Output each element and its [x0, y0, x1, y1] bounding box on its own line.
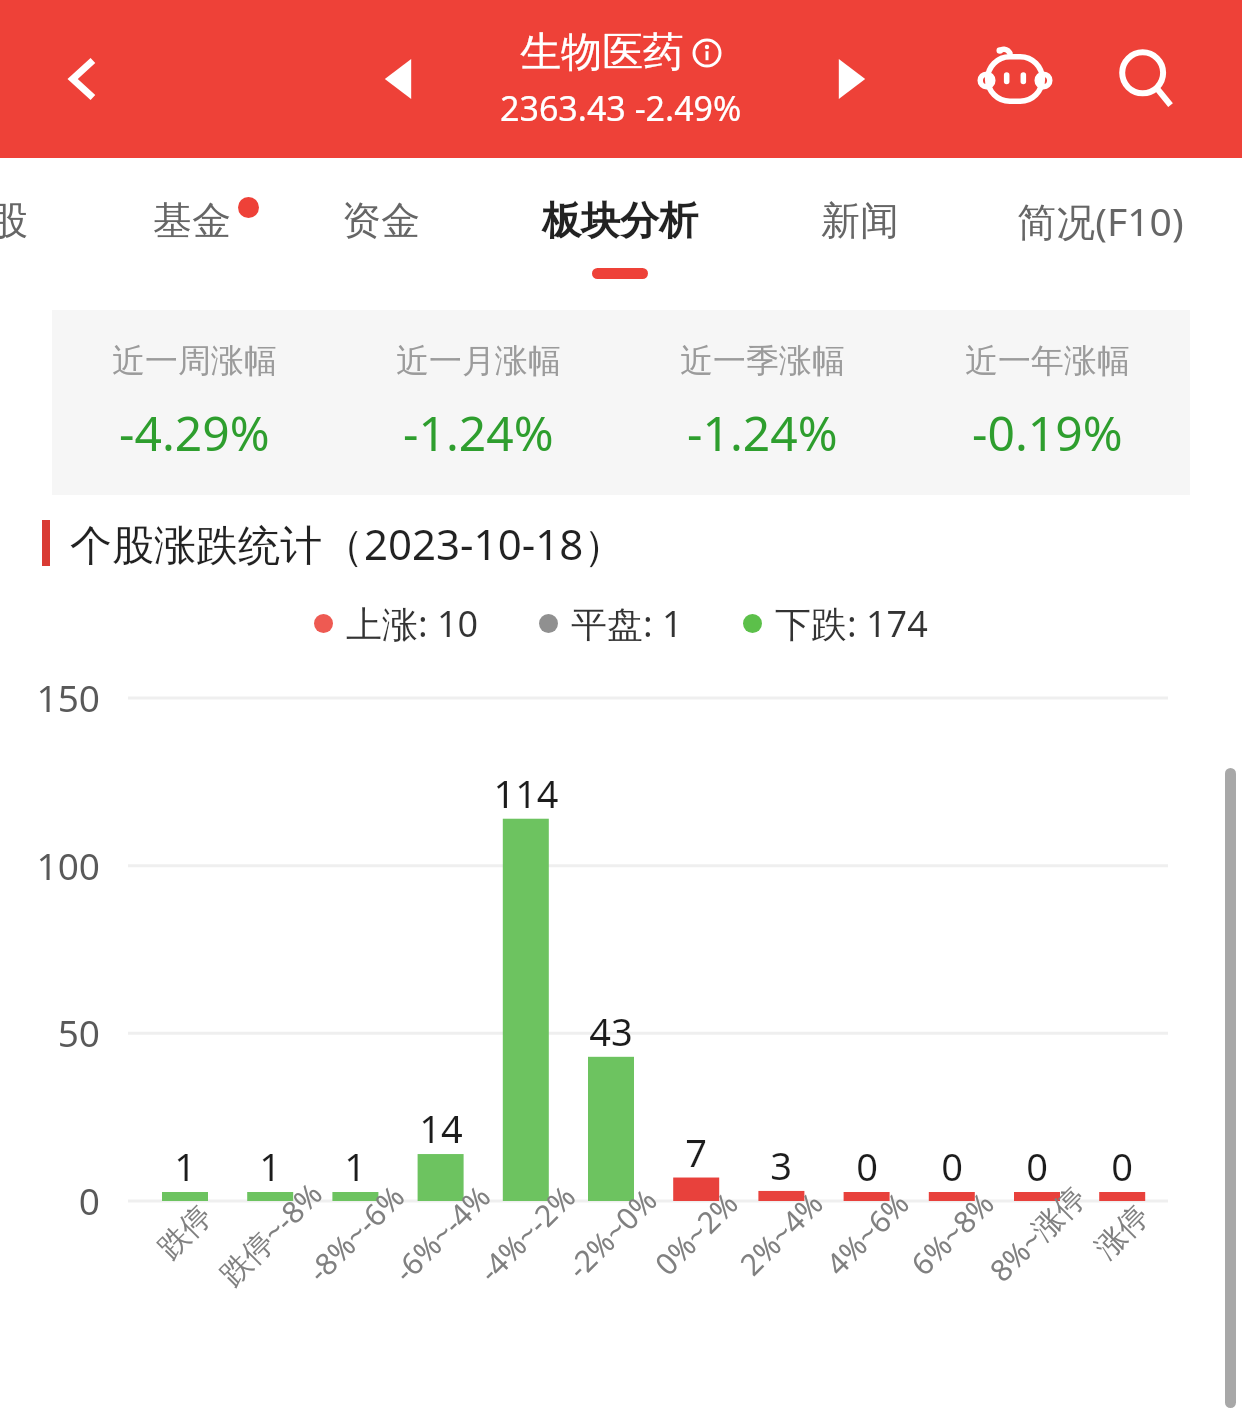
staticText: 基金 — [153, 196, 231, 245]
staticText: 平盘: 1 — [571, 599, 683, 648]
button[interactable]: 板块分析 — [515, 158, 725, 283]
staticText: 资金 — [342, 196, 420, 245]
staticText: 50 — [57, 1007, 100, 1057]
button[interactable]: AI assistant — [965, 29, 1065, 129]
button[interactable]: 平盘: 1 — [539, 599, 683, 648]
staticText: 0 — [856, 1140, 878, 1192]
staticText: 43 — [589, 1005, 633, 1057]
staticText: 0 — [941, 1140, 963, 1192]
staticText: 1 — [174, 1140, 196, 1192]
button[interactable]: Next sector — [805, 34, 895, 124]
staticText: 近一年涨幅 — [965, 340, 1130, 382]
staticText: -1.24% — [687, 400, 838, 465]
button[interactable]: 基金 — [87, 158, 297, 283]
staticText: 8%~涨停 — [980, 1177, 1094, 1290]
button[interactable]: Back — [40, 34, 130, 124]
button[interactable]: 上涨: 10 — [314, 599, 479, 648]
button[interactable]: 下跌: 174 — [743, 599, 928, 648]
button[interactable]: 资金 — [276, 158, 486, 283]
staticText: 上涨: 10 — [346, 599, 479, 648]
staticText: 14 — [419, 1102, 463, 1154]
staticText: -1.24% — [403, 400, 554, 465]
staticText: 6%~8% — [901, 1183, 1002, 1284]
staticText: -4.29% — [119, 400, 270, 465]
staticText: 100 — [36, 840, 100, 890]
button[interactable]: 股 — [0, 158, 113, 283]
button[interactable]: 生物医药 — [500, 27, 742, 131]
staticText: 0 — [1026, 1140, 1048, 1192]
staticText: -4%~-2% — [469, 1176, 584, 1291]
button[interactable]: 近一月涨幅 — [336, 310, 620, 495]
staticText: 150 — [36, 672, 100, 722]
button[interactable]: 近一年涨幅 — [905, 310, 1190, 495]
staticText: 2%~4% — [730, 1183, 831, 1284]
staticText: 0 — [1111, 1140, 1133, 1192]
staticText: 1 — [344, 1140, 366, 1192]
staticText: 近一周涨幅 — [112, 340, 277, 382]
staticText: -6%~-4% — [384, 1176, 499, 1291]
staticText: 股 — [0, 196, 28, 245]
button[interactable]: Search — [1097, 29, 1197, 129]
staticText: 2363.43 -2.49% — [500, 85, 742, 131]
staticText: 下跌: 174 — [775, 599, 928, 648]
staticText: -2%~0% — [558, 1180, 665, 1287]
staticText: 0%~2% — [645, 1183, 746, 1284]
staticText: 近一月涨幅 — [396, 340, 561, 382]
staticText: 近一季涨幅 — [680, 340, 845, 382]
staticText: 跌停 — [150, 1197, 220, 1267]
staticText: 跌停~-8% — [210, 1173, 331, 1294]
button[interactable]: 近一周涨幅 — [52, 310, 336, 495]
staticText: 板块分析 — [542, 196, 698, 245]
button[interactable]: 近一季涨幅 — [620, 310, 905, 495]
staticText: 简况(F10) — [1017, 194, 1184, 247]
staticText: -8%~-6% — [298, 1176, 413, 1291]
staticText: 生物医药 — [520, 27, 684, 79]
button[interactable]: 简况(F10) — [995, 158, 1205, 283]
staticText: 涨停 — [1087, 1197, 1157, 1267]
staticText: 4%~6% — [816, 1183, 917, 1284]
button[interactable]: 新闻 — [755, 158, 965, 283]
staticText: 1 — [259, 1140, 281, 1192]
button[interactable]: Previous sector — [355, 34, 445, 124]
staticText: 个股涨跌统计（2023-10-18） — [70, 515, 626, 572]
staticText: 114 — [493, 767, 559, 819]
staticText: 0 — [78, 1175, 100, 1225]
staticText: 新闻 — [821, 196, 899, 245]
staticText: 3 — [770, 1139, 792, 1191]
staticText: 7 — [685, 1126, 707, 1178]
staticText: -0.19% — [972, 400, 1123, 465]
